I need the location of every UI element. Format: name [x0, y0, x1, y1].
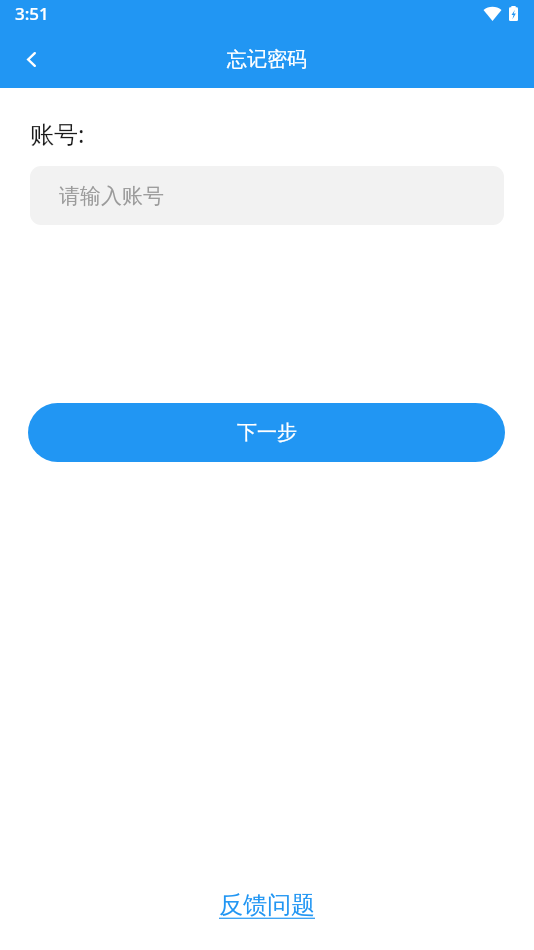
button[interactable]: 反馈问题	[205, 886, 329, 924]
staticText: 忘记密码	[227, 47, 307, 72]
staticText: 3:51	[15, 2, 49, 25]
staticText: 请输入账号	[59, 183, 164, 209]
button[interactable]: 请输入账号	[30, 166, 504, 225]
staticText: 下一步	[237, 420, 297, 445]
staticText: 账号:	[30, 117, 85, 150]
button[interactable]: 下一步	[28, 403, 505, 462]
button[interactable]: Back	[0, 31, 56, 87]
staticText: 反馈问题	[219, 890, 315, 920]
